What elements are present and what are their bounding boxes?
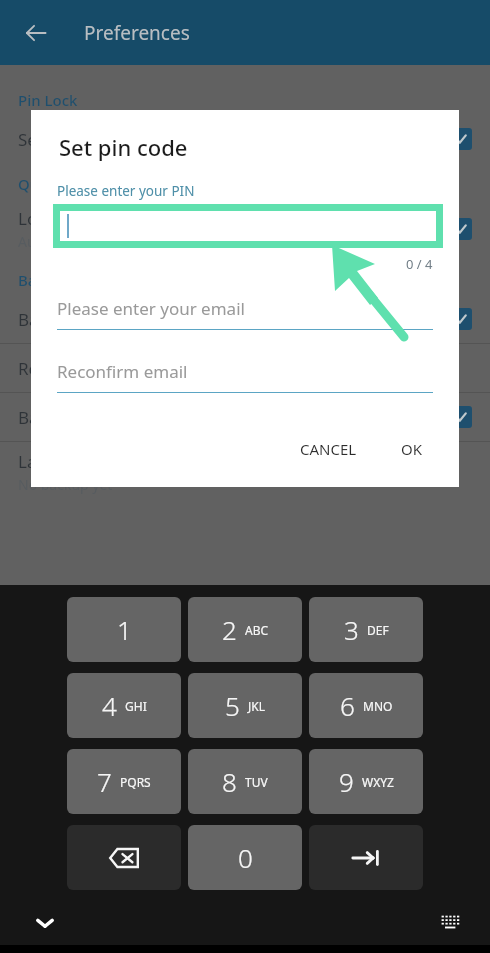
staticText: Reconfirm email <box>57 360 188 383</box>
staticText: Set pin code <box>59 132 188 162</box>
button[interactable]: 3 <box>309 597 423 662</box>
staticText: Last backup <box>18 450 114 473</box>
button[interactable]: CANCEL <box>288 431 369 467</box>
button[interactable]: 8 <box>188 749 302 814</box>
button[interactable]: Reconfirm email <box>57 360 433 393</box>
staticText: ABC <box>245 622 269 638</box>
button[interactable] <box>53 204 443 248</box>
button[interactable]: Back <box>12 9 60 57</box>
button[interactable]: OK <box>389 431 435 467</box>
staticText: 6 <box>340 688 355 723</box>
staticText: GHI <box>125 698 147 714</box>
staticText: 3 <box>344 612 359 647</box>
button[interactable]: Next field <box>309 825 423 890</box>
staticText: Quick settings <box>18 174 121 194</box>
staticText: CANCEL <box>300 439 357 459</box>
staticText: Please enter your email <box>57 297 245 320</box>
staticText: 8 <box>222 764 237 799</box>
button[interactable]: Backup now <box>0 295 490 343</box>
staticText: TUV <box>245 774 268 790</box>
staticText: 9 <box>339 764 354 799</box>
button[interactable]: 9 <box>309 749 423 814</box>
staticText: No backup yet <box>18 475 113 494</box>
button[interactable]: 0 <box>188 825 302 890</box>
staticText: 7 <box>97 764 112 799</box>
staticText: DEF <box>367 622 389 638</box>
staticText: Preferences <box>84 20 190 46</box>
staticText: Pin Lock <box>18 90 78 110</box>
button[interactable]: 5 <box>188 673 302 738</box>
button[interactable]: 1 <box>67 597 181 662</box>
staticText: 2 <box>222 612 237 647</box>
staticText: Lock on exit <box>18 207 113 230</box>
button[interactable]: Hide keyboard <box>26 904 64 942</box>
staticText: MNO <box>363 698 393 714</box>
button[interactable]: Switch keyboard <box>432 904 470 942</box>
staticText: 0 / 4 <box>406 255 433 273</box>
staticText: 4 <box>102 688 117 723</box>
button[interactable]: 2 <box>188 597 302 662</box>
staticText: Automatically lock <box>18 232 138 251</box>
staticText: Restore <box>18 357 79 380</box>
button[interactable]: 6 <box>309 673 423 738</box>
staticText: WXYZ <box>362 774 394 790</box>
button[interactable]: Please enter your email <box>57 297 433 330</box>
button[interactable]: 4 <box>67 673 181 738</box>
staticText: Set pin code <box>18 128 116 151</box>
button[interactable]: 7 <box>67 749 181 814</box>
staticText: OK <box>401 439 423 459</box>
staticText: PQRS <box>120 774 151 790</box>
button[interactable]: Restore <box>0 344 490 392</box>
staticText: JKL <box>248 698 265 714</box>
staticText: Backup only over Wi-Fi <box>18 406 198 429</box>
staticText: 1 <box>117 612 132 647</box>
staticText: 0 <box>238 840 253 875</box>
button[interactable]: Backup only over Wi-Fi <box>0 393 490 441</box>
staticText: Please enter your PIN <box>57 182 195 200</box>
staticText: Backup <box>18 270 71 290</box>
staticText: Backup now <box>18 308 116 331</box>
button[interactable]: Lock on exit <box>0 199 490 259</box>
staticText: 5 <box>225 688 240 723</box>
button[interactable]: Backspace <box>67 825 181 890</box>
button[interactable]: Set pin code <box>0 115 490 163</box>
button[interactable]: Last backup <box>0 442 490 502</box>
